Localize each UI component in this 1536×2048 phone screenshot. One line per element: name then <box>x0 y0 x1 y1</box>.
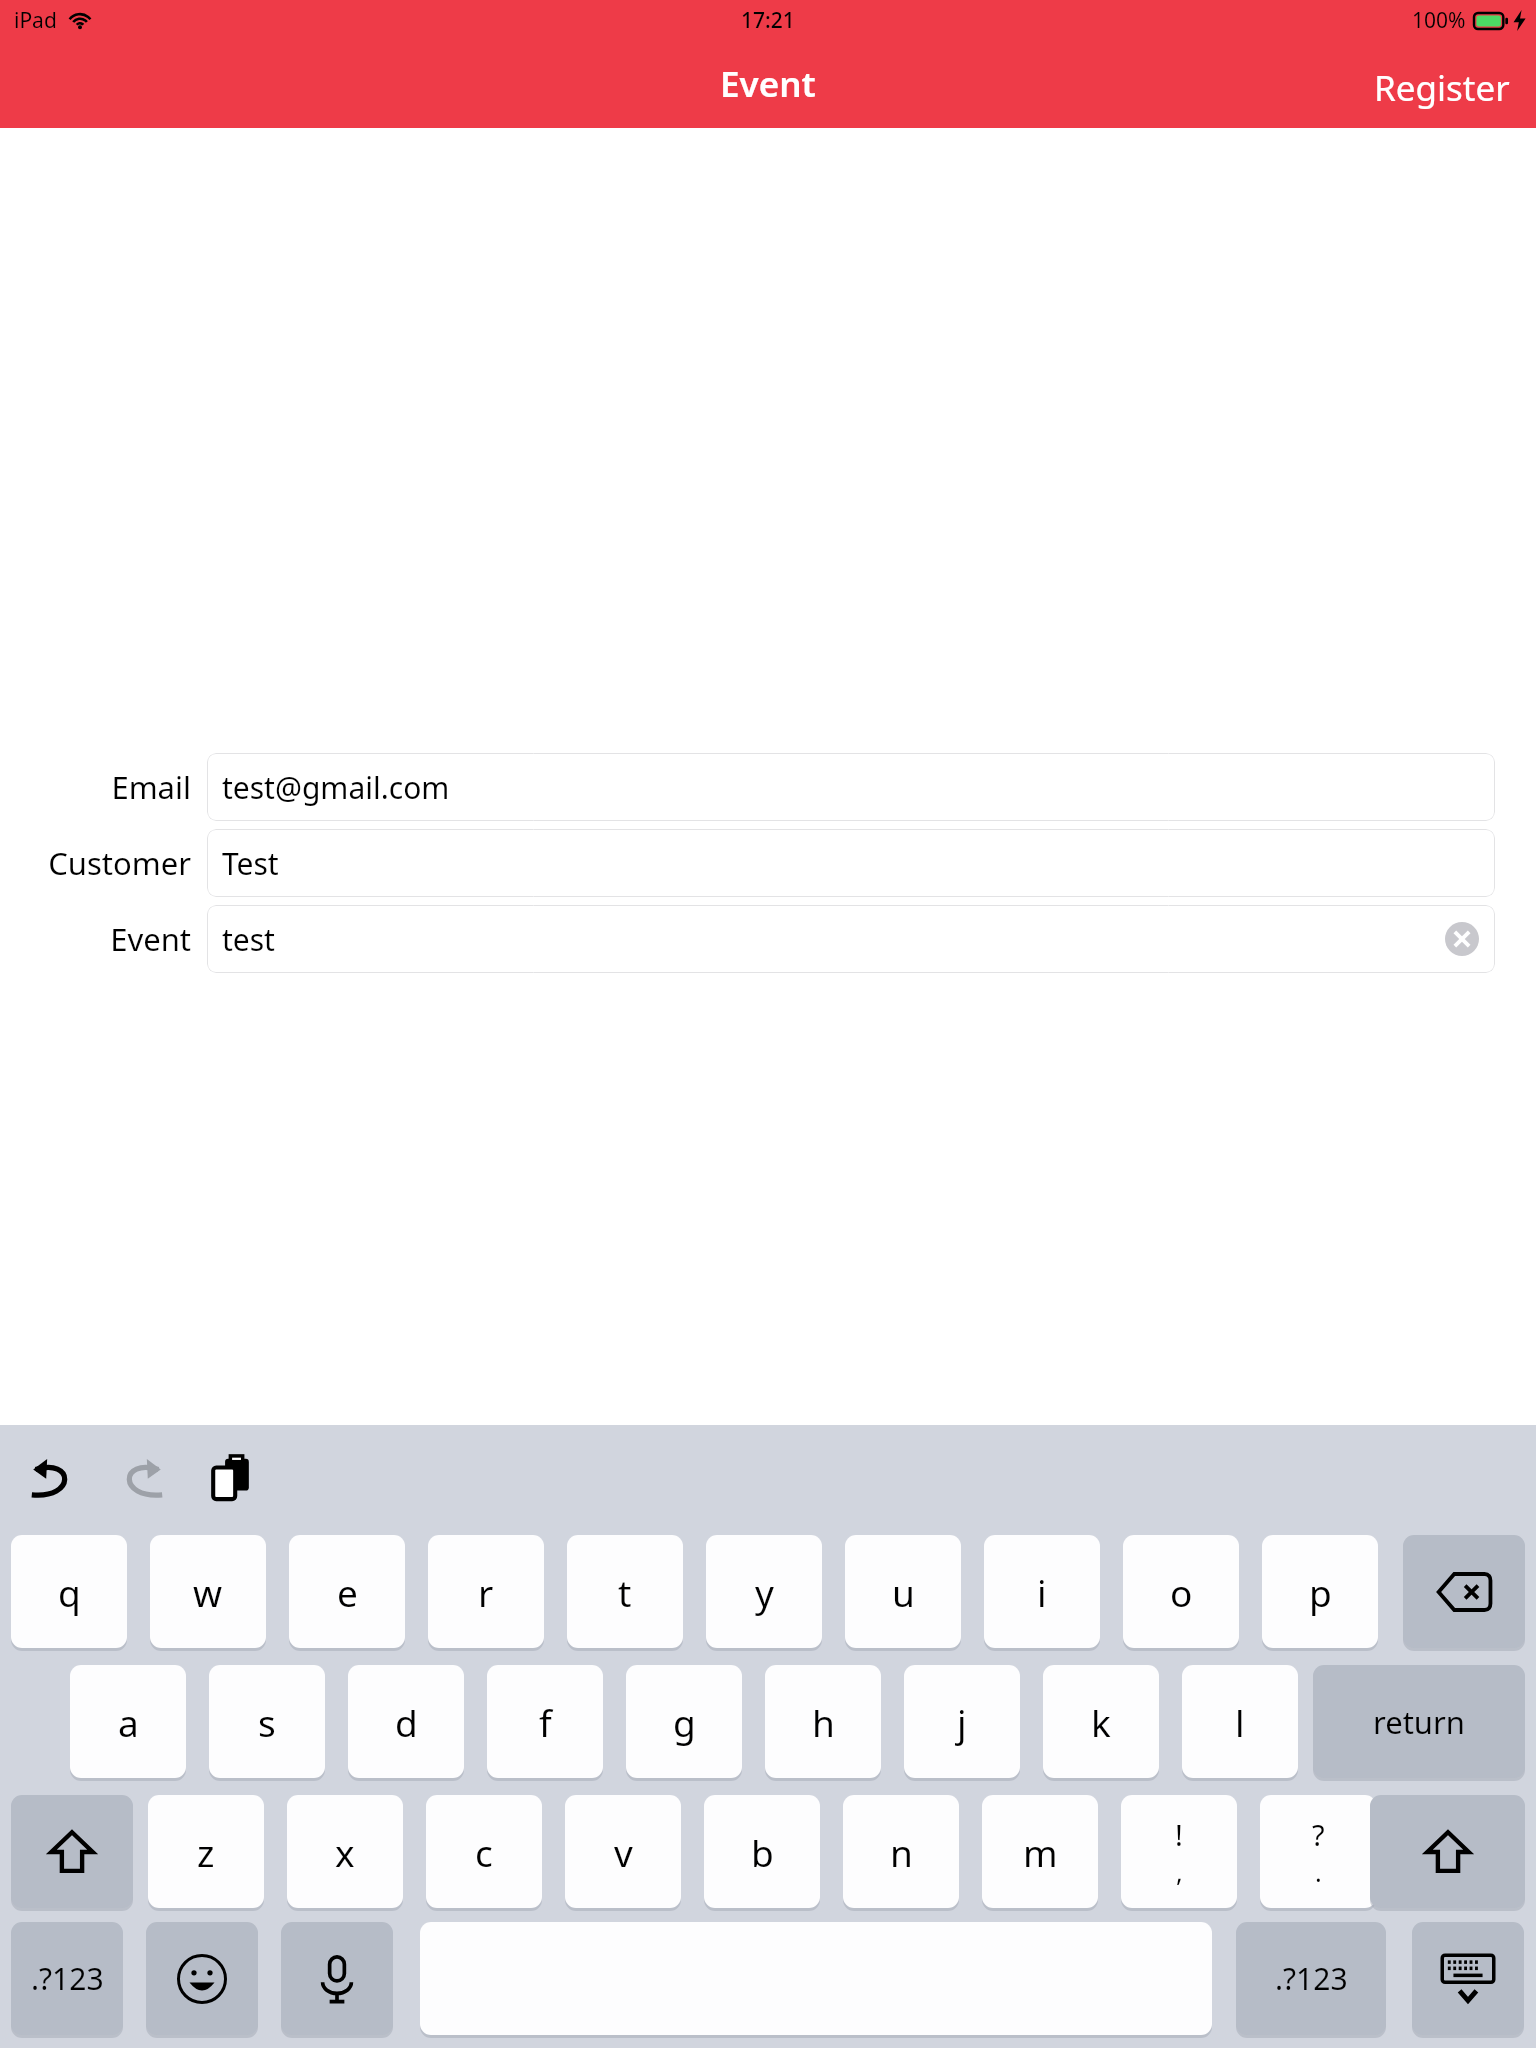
staticText: n <box>890 1827 913 1877</box>
staticText: m <box>1023 1827 1058 1877</box>
button[interactable]: Emoji <box>146 1922 258 2035</box>
staticText: x <box>335 1827 355 1877</box>
staticText: e <box>337 1567 358 1617</box>
staticText: d <box>395 1697 418 1747</box>
button[interactable]: n <box>843 1795 959 1908</box>
staticText: w <box>193 1567 223 1617</box>
staticText: s <box>258 1697 276 1747</box>
staticText: . <box>1315 1855 1322 1889</box>
button[interactable]: v <box>565 1795 681 1908</box>
staticText: i <box>1037 1567 1047 1617</box>
button[interactable]: x <box>287 1795 403 1908</box>
button[interactable]: y <box>706 1535 822 1648</box>
staticText: t <box>618 1567 632 1617</box>
button[interactable]: b <box>704 1795 820 1908</box>
staticText: .?123 <box>1275 1958 1348 1999</box>
staticText: g <box>673 1697 696 1747</box>
button[interactable]: ? <box>1260 1795 1376 1908</box>
staticText: Register <box>1374 64 1510 112</box>
button[interactable]: t <box>567 1535 683 1648</box>
button[interactable]: Shift <box>1370 1795 1525 1908</box>
button[interactable]: test <box>207 905 1495 973</box>
button[interactable]: o <box>1123 1535 1239 1648</box>
staticText: Test <box>222 843 279 884</box>
staticText: l <box>1235 1697 1245 1747</box>
button[interactable]: Hide keyboard <box>1412 1922 1524 2035</box>
button[interactable]: Undo <box>16 1443 86 1513</box>
staticText: , <box>1176 1855 1183 1889</box>
staticText: o <box>1170 1567 1193 1617</box>
staticText: 17:21 <box>741 6 795 35</box>
staticText: Event <box>110 918 191 960</box>
staticText: Customer <box>48 842 191 884</box>
staticText: 100% <box>1412 6 1466 35</box>
button[interactable]: c <box>426 1795 542 1908</box>
button[interactable]: Paste <box>198 1443 268 1513</box>
staticText: p <box>1309 1567 1332 1617</box>
button[interactable]: ! <box>1121 1795 1237 1908</box>
button[interactable]: w <box>150 1535 266 1648</box>
button[interactable]: Shift <box>11 1795 133 1908</box>
staticText: f <box>539 1697 552 1747</box>
button[interactable]: m <box>982 1795 1098 1908</box>
button[interactable]: .?123 <box>1236 1922 1386 2035</box>
staticText: v <box>614 1827 633 1877</box>
button[interactable]: g <box>626 1665 742 1778</box>
button[interactable]: Register <box>1374 64 1536 128</box>
button[interactable]: z <box>148 1795 264 1908</box>
button[interactable]: s <box>209 1665 325 1778</box>
staticText: Email <box>111 766 191 808</box>
button[interactable]: i <box>984 1535 1100 1648</box>
button[interactable]: Clear text <box>1445 922 1479 956</box>
button[interactable]: Test <box>207 829 1495 897</box>
button[interactable]: test@gmail.com <box>207 753 1495 821</box>
button[interactable]: .?123 <box>11 1922 123 2035</box>
staticText: z <box>197 1827 215 1877</box>
staticText: test <box>222 919 275 960</box>
staticText: ! <box>1175 1815 1183 1854</box>
button[interactable]: r <box>428 1535 544 1648</box>
staticText: b <box>751 1827 774 1877</box>
staticText: Event <box>720 60 816 108</box>
button[interactable]: return <box>1313 1665 1525 1778</box>
staticText: j <box>957 1697 967 1747</box>
staticText: ? <box>1312 1815 1325 1854</box>
staticText: u <box>892 1567 915 1617</box>
staticText: q <box>58 1567 81 1617</box>
button[interactable]: d <box>348 1665 464 1778</box>
button[interactable]: a <box>70 1665 186 1778</box>
button[interactable]: k <box>1043 1665 1159 1778</box>
button[interactable]: p <box>1262 1535 1378 1648</box>
staticText: k <box>1091 1697 1111 1747</box>
button[interactable]: u <box>845 1535 961 1648</box>
button[interactable]: e <box>289 1535 405 1648</box>
staticText: r <box>478 1567 494 1617</box>
button[interactable]: j <box>904 1665 1020 1778</box>
staticText: return <box>1373 1701 1465 1743</box>
staticText: .?123 <box>31 1958 104 1999</box>
button[interactable]: q <box>11 1535 127 1648</box>
button[interactable]: h <box>765 1665 881 1778</box>
staticText: a <box>118 1697 139 1747</box>
staticText: iPad <box>14 6 57 35</box>
button[interactable]: f <box>487 1665 603 1778</box>
staticText: c <box>475 1827 493 1877</box>
staticText: h <box>812 1697 835 1747</box>
staticText: y <box>755 1567 774 1617</box>
button[interactable]: Backspace <box>1403 1535 1525 1648</box>
button[interactable]: Redo <box>108 1443 178 1513</box>
button[interactable]: l <box>1182 1665 1298 1778</box>
button[interactable]: Dictation <box>281 1922 393 2035</box>
staticText: test@gmail.com <box>222 767 450 808</box>
